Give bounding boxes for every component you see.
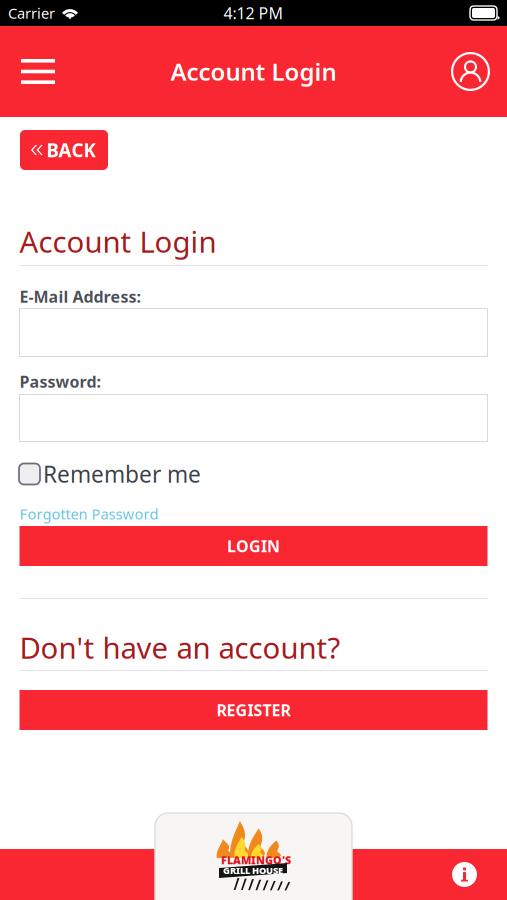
button[interactable]: Forgotten Password xyxy=(19,504,158,523)
staticText: Account Login xyxy=(170,56,336,87)
staticText: Remember me xyxy=(43,459,201,489)
button[interactable]: REGISTER xyxy=(19,690,487,730)
staticText: FLAMINGO'S xyxy=(221,853,291,867)
button[interactable]: LOGIN xyxy=(19,526,487,566)
staticText: BACK xyxy=(46,138,95,162)
staticText: E-Mail Address: xyxy=(19,286,140,307)
button[interactable]: Remember me xyxy=(19,461,201,487)
button[interactable]: Menu xyxy=(0,37,75,106)
staticText: Password: xyxy=(19,371,100,392)
button[interactable]: Information xyxy=(439,849,490,900)
staticText: Forgotten Password xyxy=(19,504,158,523)
staticText: GRILL HOUSE xyxy=(223,864,283,877)
staticText: 4:12 PM xyxy=(223,2,283,24)
button[interactable]: Account xyxy=(432,36,507,107)
button[interactable]: BACK xyxy=(20,130,108,170)
staticText: LOGIN xyxy=(227,535,280,557)
staticText: Carrier xyxy=(8,3,55,23)
staticText: Account Login xyxy=(19,222,216,261)
staticText: REGISTER xyxy=(216,699,290,721)
staticText: Don't have an account? xyxy=(19,628,340,667)
